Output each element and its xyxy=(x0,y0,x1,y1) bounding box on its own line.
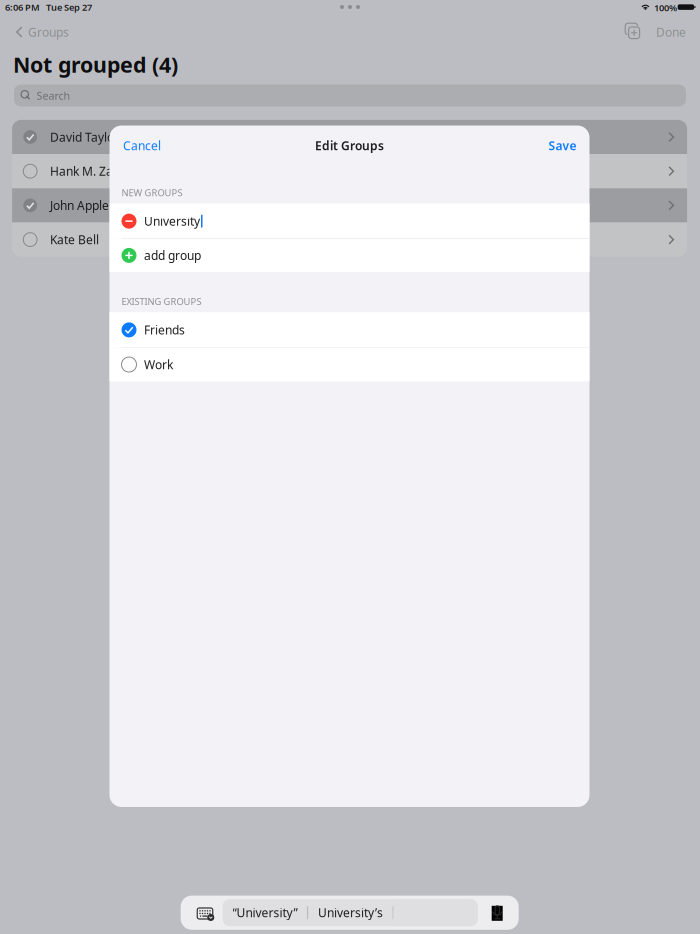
button[interactable]: Done xyxy=(652,22,690,42)
staticText: Friends xyxy=(144,322,185,338)
button[interactable]: Hank M. Zakroff xyxy=(12,154,687,188)
staticText: 100% xyxy=(654,1,677,14)
staticText: “University” xyxy=(232,905,297,921)
button[interactable]: Cancel xyxy=(119,131,164,159)
button[interactable]: Search xyxy=(14,84,686,106)
button[interactable]: Save xyxy=(541,131,576,159)
staticText: John Appleseed xyxy=(50,197,136,213)
button[interactable]: add group xyxy=(109,239,589,272)
button[interactable]: David Taylor xyxy=(12,120,687,154)
staticText: NEW GROUPS xyxy=(121,186,182,199)
staticText: University xyxy=(144,213,200,229)
button[interactable]: Friends xyxy=(109,312,589,348)
button[interactable]: University xyxy=(109,203,589,239)
button[interactable]: Dictate xyxy=(492,906,503,921)
staticText: Search xyxy=(36,88,70,103)
button[interactable]: Hide keyboard xyxy=(196,907,213,920)
button[interactable]: Groups xyxy=(10,22,75,42)
button[interactable]: New group xyxy=(621,19,643,42)
button[interactable]: Kate Bell xyxy=(12,222,687,257)
staticText: add group xyxy=(144,247,201,263)
button[interactable]: “University” xyxy=(223,899,307,926)
staticText: Hank M. Zakroff xyxy=(50,163,139,179)
staticText: Tue Sep 27 xyxy=(46,1,92,13)
staticText: Not grouped (4) xyxy=(13,50,178,79)
staticText: Work xyxy=(144,357,173,372)
button[interactable]: John Appleseed xyxy=(12,188,687,222)
staticText: EXISTING GROUPS xyxy=(121,295,201,308)
staticText: Cancel xyxy=(123,137,161,153)
staticText: Save xyxy=(548,137,576,153)
staticText: Edit Groups xyxy=(315,137,384,153)
staticText: 6:06 PM xyxy=(5,1,40,13)
staticText: Kate Bell xyxy=(50,232,99,247)
staticText: David Taylor xyxy=(50,129,119,145)
staticText: Groups xyxy=(28,24,69,40)
button[interactable]: Work xyxy=(109,348,589,381)
button[interactable]: University’s xyxy=(308,899,393,926)
staticText: Done xyxy=(656,24,686,40)
staticText: University’s xyxy=(318,905,383,921)
